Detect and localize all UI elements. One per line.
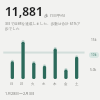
staticText: 月: [20, 82, 24, 86]
button[interactable]: 1月28日〜2月3日: [5, 91, 100, 96]
staticText: 5.0k: [90, 68, 97, 72]
staticText: 歩でした: [5, 27, 20, 32]
staticText: (1日平均): [50, 13, 65, 18]
staticText: 土: [75, 82, 79, 86]
staticText: 1月28日〜2月3日: [5, 91, 35, 96]
button[interactable]: 土: [71, 82, 82, 86]
button[interactable]: 3日で目標を達成しました。歩数は合計 61%ア: [5, 21, 92, 32]
staticText: 日: [10, 82, 14, 86]
staticText: 11,881: [5, 3, 43, 19]
button[interactable]: 11,881: [5, 3, 96, 19]
button[interactable]: 金: [60, 82, 71, 86]
staticText: 水: [42, 82, 46, 86]
staticText: 3日で目標を達成しました。歩数は合計 61%ア: [5, 21, 81, 26]
staticText: 金: [64, 82, 68, 86]
staticText: 歩: [44, 13, 48, 18]
button[interactable]: 水: [38, 82, 49, 86]
staticText: 木: [53, 82, 57, 86]
staticText: 15k: [91, 38, 97, 42]
button[interactable]: 月: [17, 82, 27, 86]
button[interactable]: 日: [7, 82, 17, 86]
button[interactable]: 火: [27, 82, 38, 86]
button[interactable]: 15k: [0, 36, 100, 81]
button[interactable]: 木: [49, 82, 60, 86]
staticText: 10k: [91, 53, 97, 57]
staticText: 火: [31, 82, 35, 86]
